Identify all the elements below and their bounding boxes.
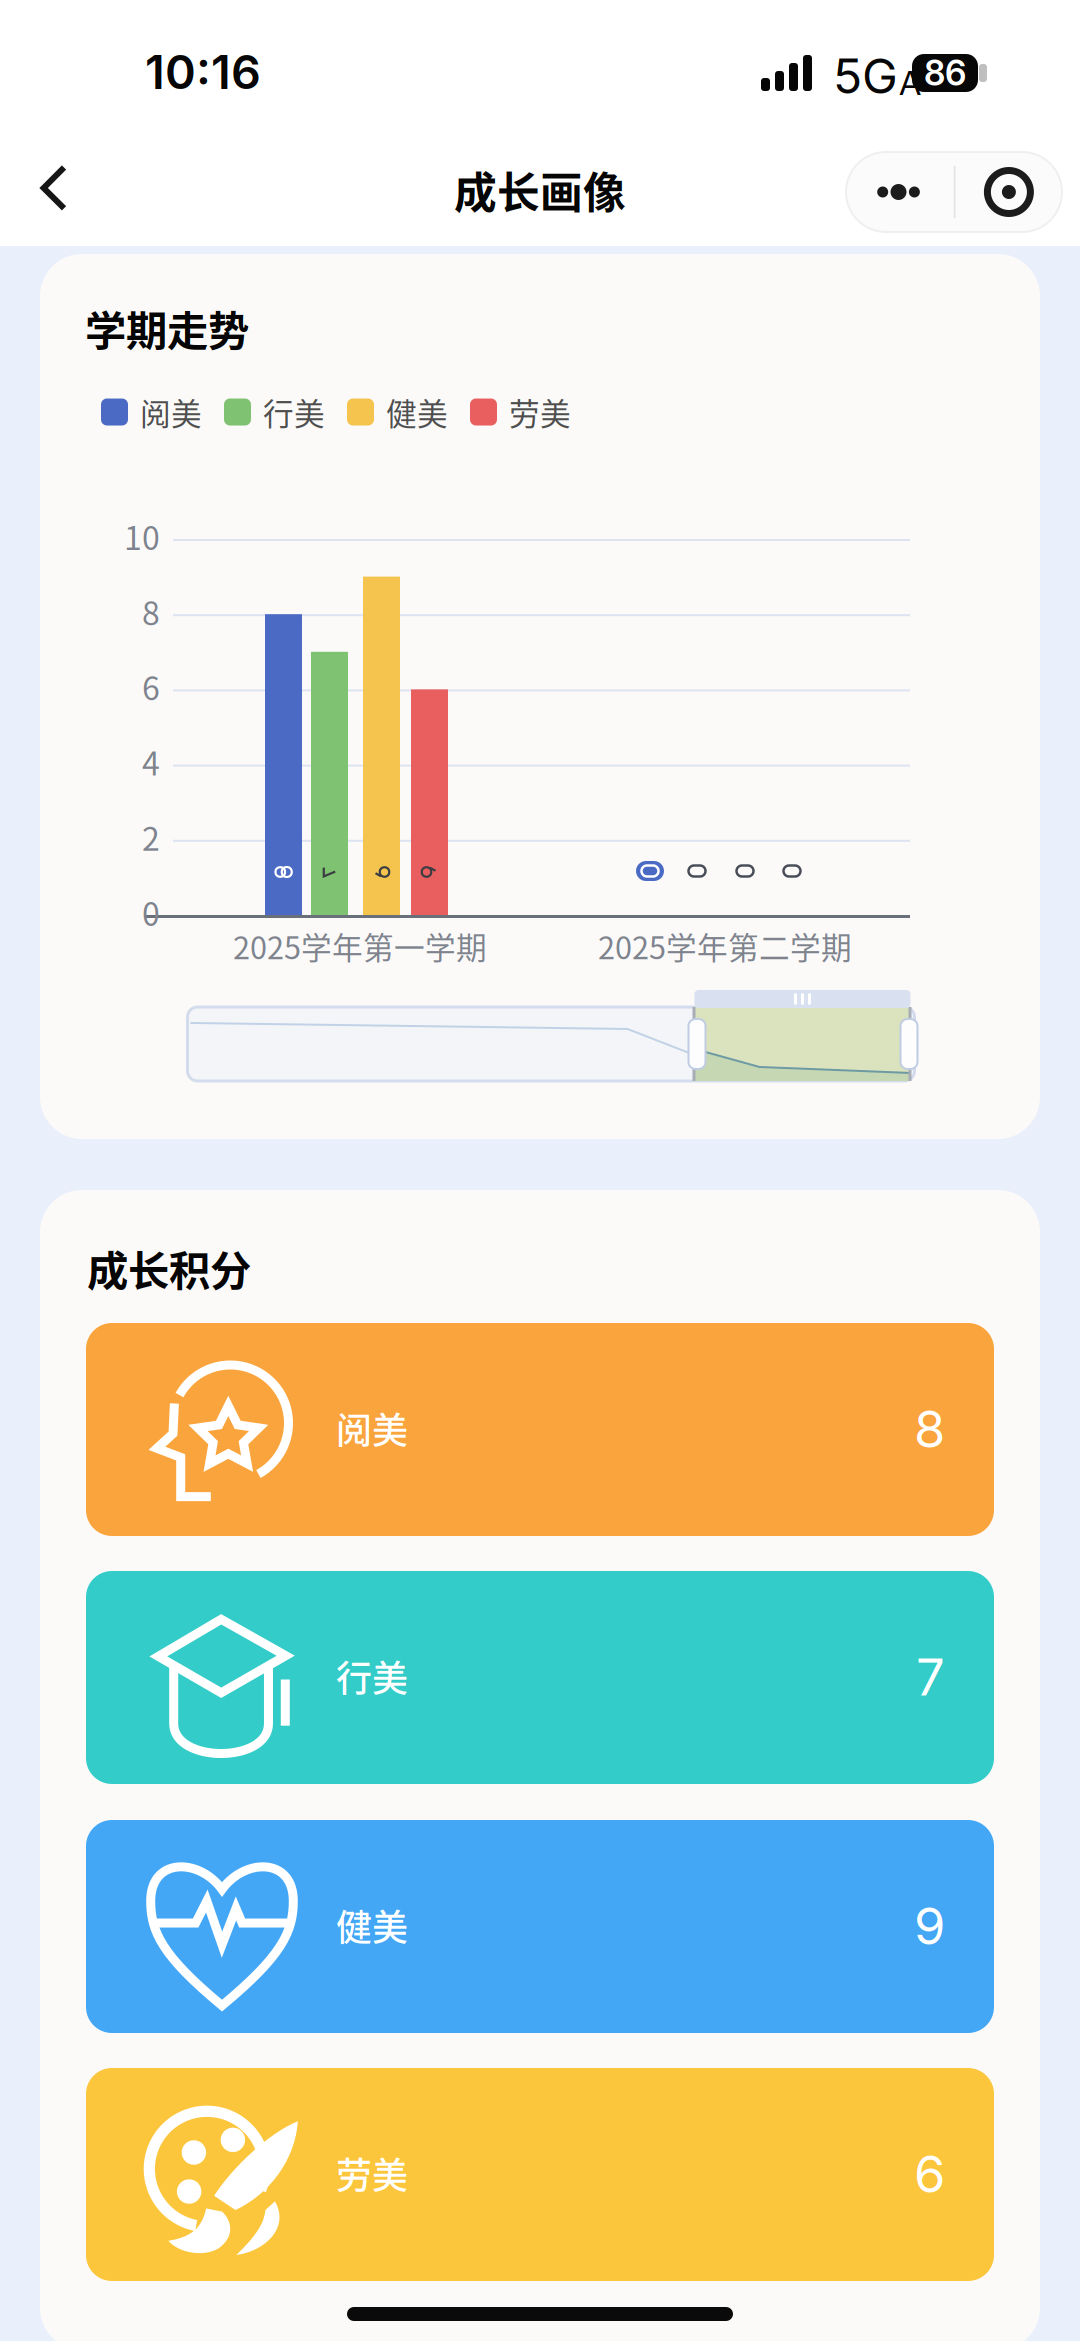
staticText: 成长画像 (454, 159, 626, 221)
staticText: 86 (924, 52, 966, 94)
staticText: 劳美 (509, 390, 571, 434)
staticText: 4 (142, 738, 160, 785)
staticText: 0 (142, 889, 160, 935)
staticText: 阅美 (140, 390, 202, 434)
staticText: 劳美 (336, 2147, 408, 2199)
button[interactable]: 更多 (0, 150, 216, 230)
staticText: 行美 (336, 1650, 408, 1702)
staticText: 7 (916, 1646, 945, 1708)
button[interactable]: 返回 (0, 150, 96, 246)
button[interactable]: 健美 (86, 1820, 994, 2033)
staticText: 行美 (263, 390, 325, 434)
staticText: 健美 (336, 1899, 408, 1951)
button[interactable]: 阅美 (86, 1323, 994, 1536)
staticText: 10 (124, 513, 160, 559)
staticText: 成长积分 (87, 1238, 251, 1298)
staticText: 2025学年第二学期 (598, 924, 852, 968)
staticText: 9 (914, 1895, 945, 1957)
staticText: 6 (142, 663, 160, 709)
button[interactable]: 行美 (86, 1571, 994, 1784)
staticText: 6 (914, 2143, 945, 2205)
staticText: 健美 (386, 390, 448, 434)
staticText: 阅美 (336, 1402, 408, 1454)
staticText: 2025学年第一学期 (233, 924, 487, 968)
button[interactable]: 劳美 (86, 2068, 994, 2281)
staticText: 2 (142, 814, 160, 860)
staticText: A (899, 63, 921, 103)
staticText: 10:16 (145, 44, 261, 100)
staticText: 5G (833, 47, 898, 105)
staticText: 学期走势 (85, 298, 249, 358)
staticText: 8 (142, 588, 160, 634)
staticText: 8 (914, 1398, 945, 1460)
